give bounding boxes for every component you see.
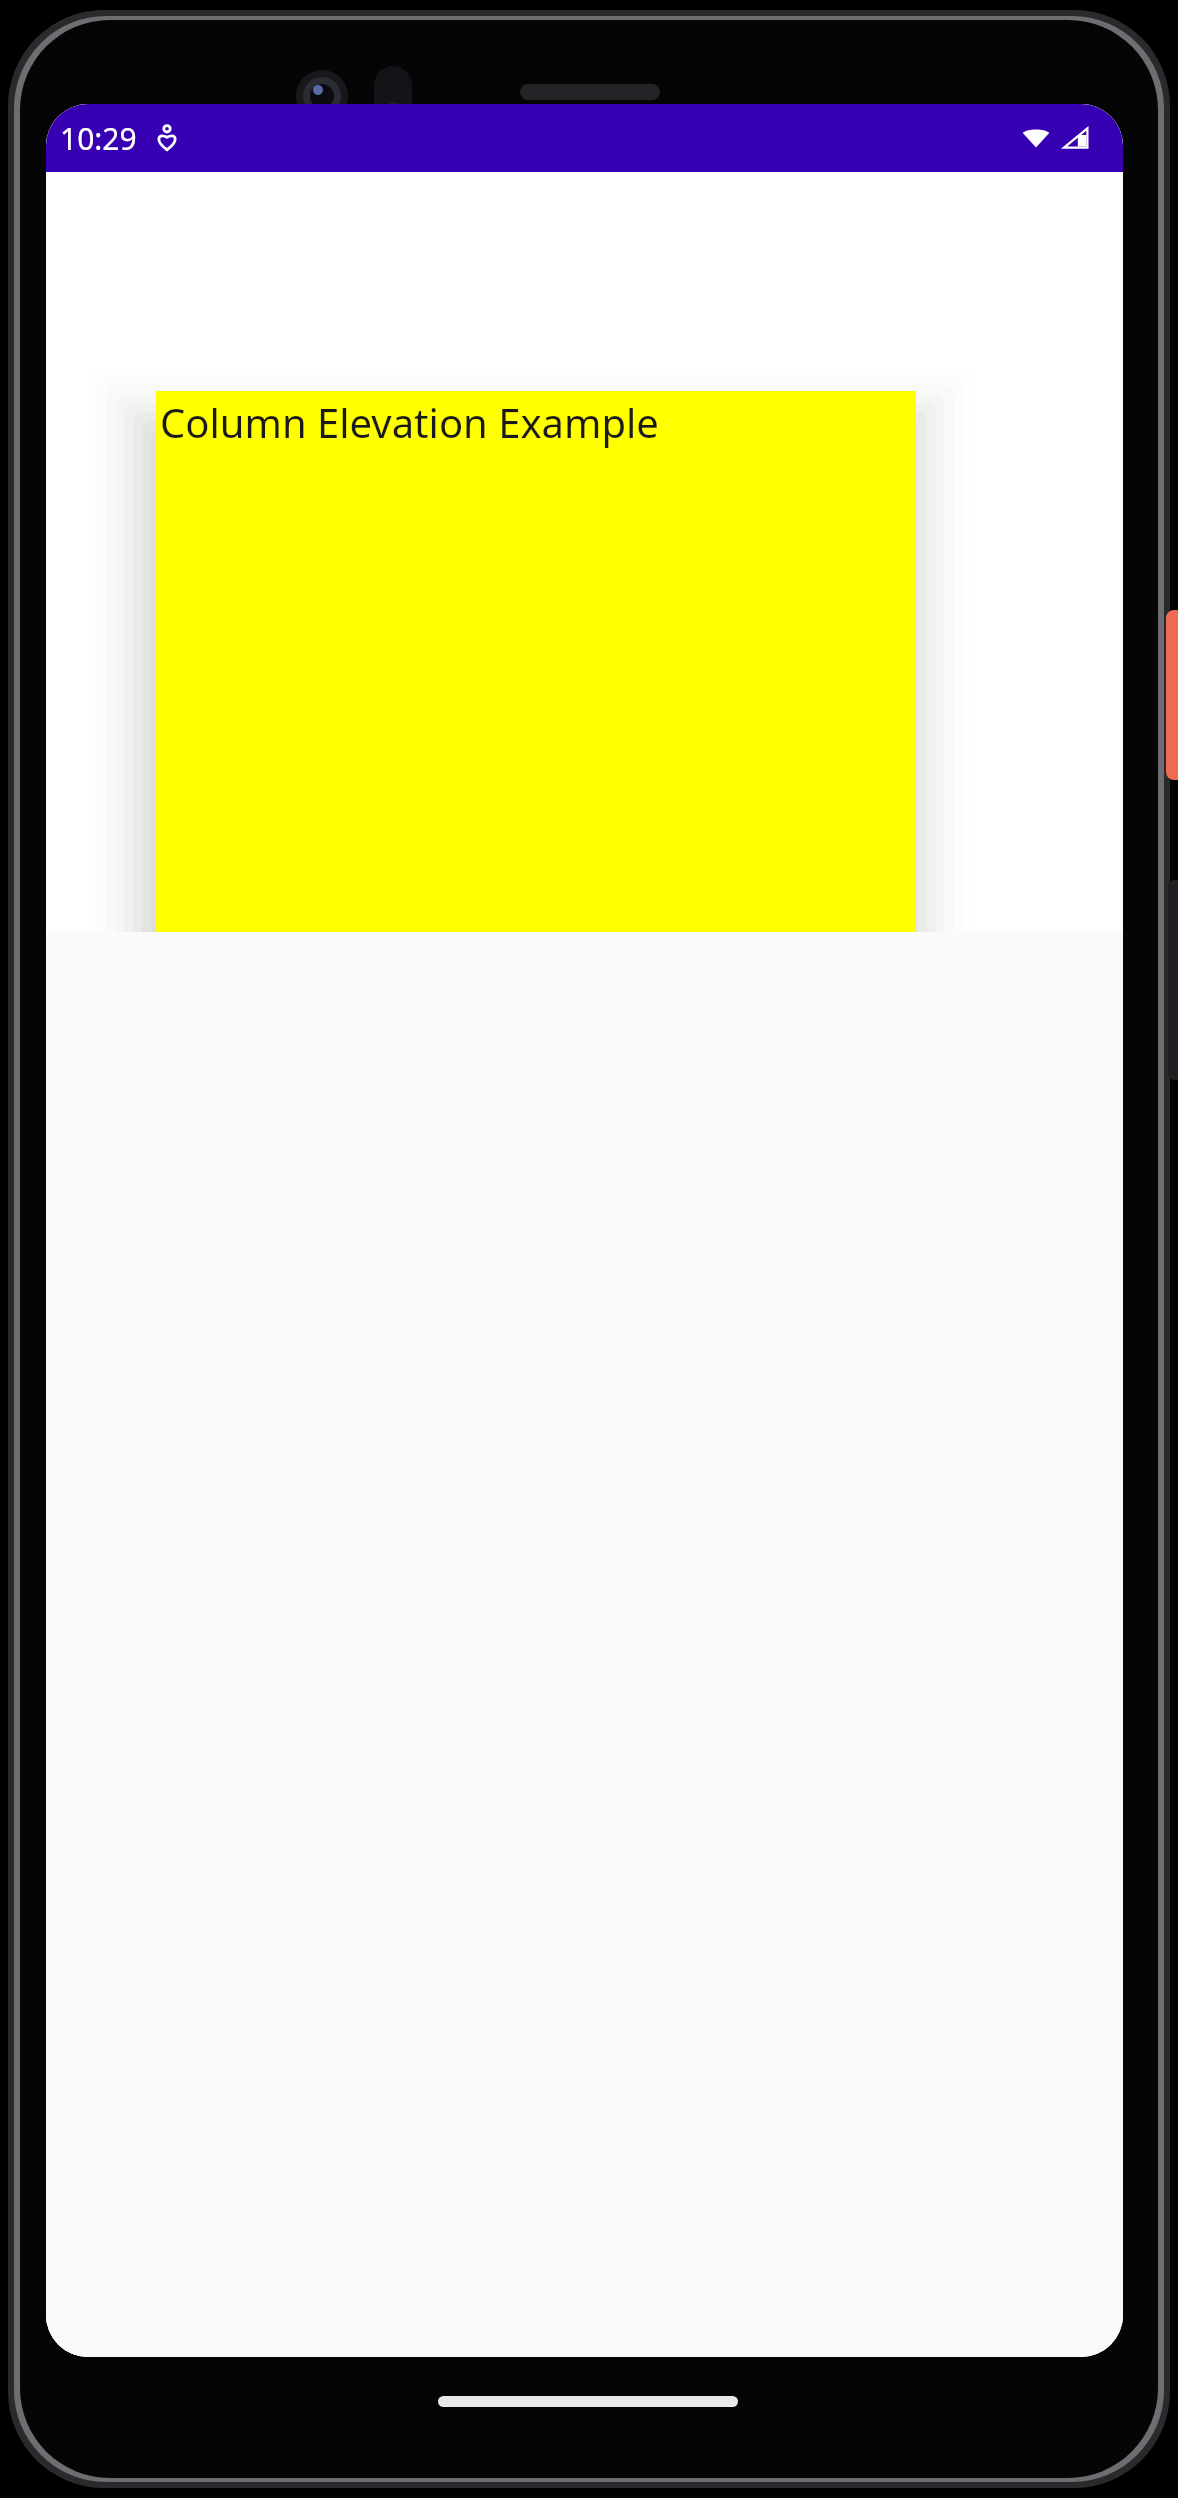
staticText: Column Elevation Example: [160, 395, 659, 449]
staticText: 10:29: [60, 118, 137, 159]
button[interactable]: Column Elevation Example: [156, 391, 916, 995]
other: Mobile signal: [1061, 123, 1091, 153]
other: Wi-Fi: [1021, 123, 1051, 153]
other: Accessibility: [153, 124, 181, 152]
